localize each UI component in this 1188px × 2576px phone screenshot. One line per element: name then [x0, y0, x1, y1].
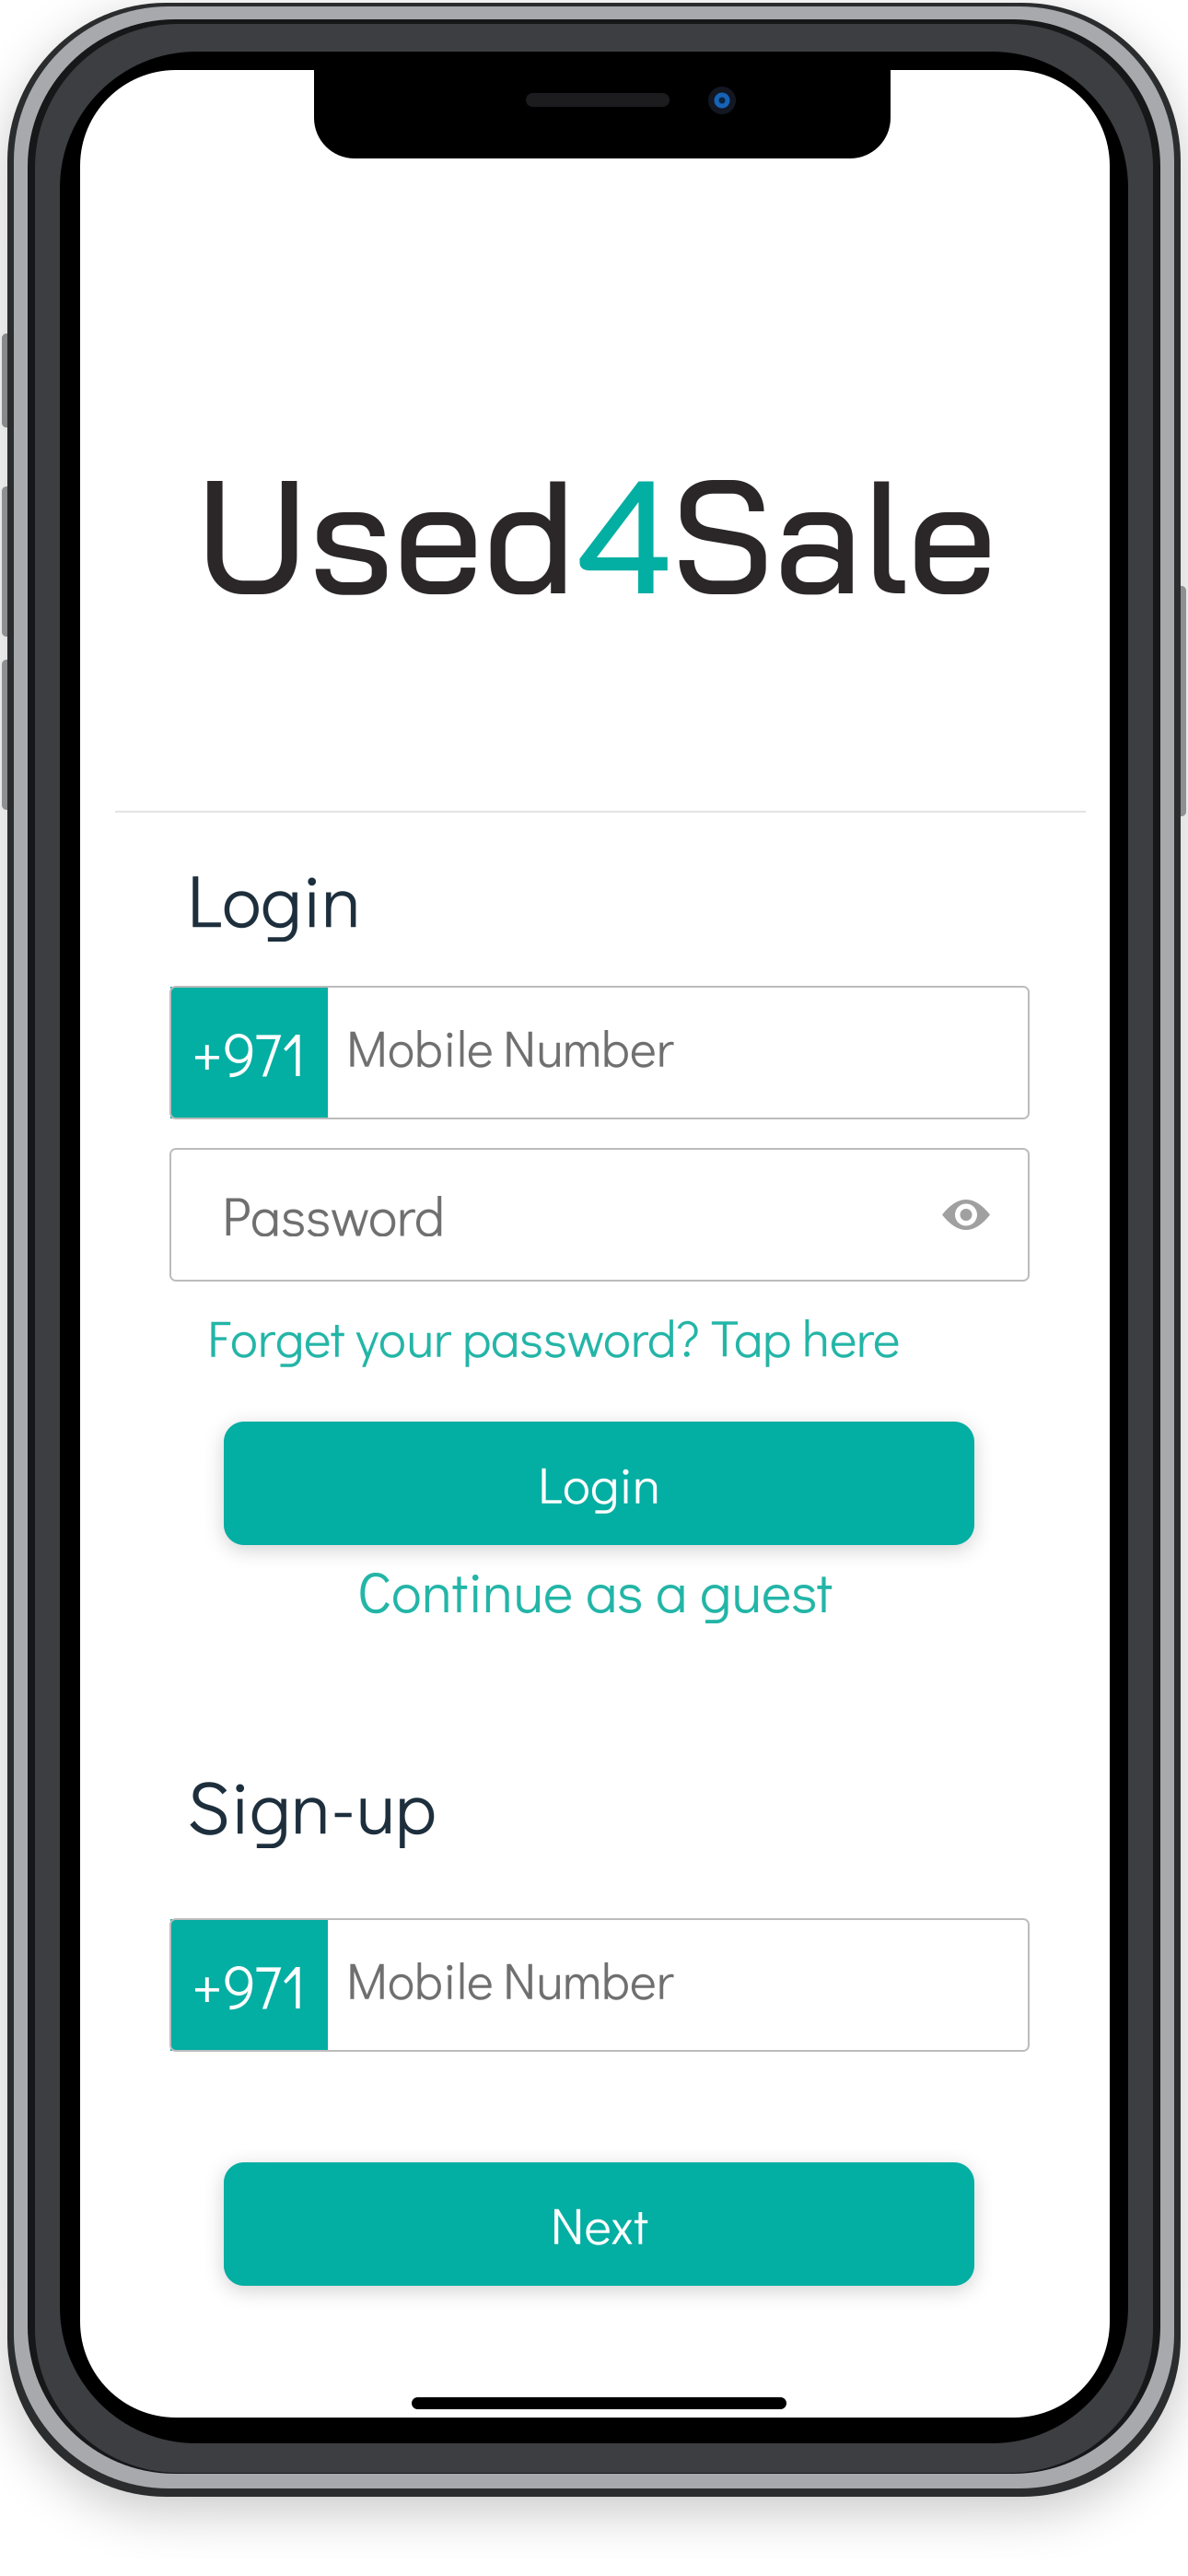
staticText: Continue as a guest — [357, 1553, 833, 1627]
staticText: +971 — [192, 1013, 306, 1092]
button[interactable]: Forget your password? Tap here — [170, 1301, 937, 1373]
staticText: Forget your password? Tap here — [207, 1303, 900, 1371]
button[interactable]: Login — [224, 1422, 974, 1545]
staticText: Used — [196, 434, 577, 633]
staticText: Sign-up — [187, 1757, 437, 1853]
button[interactable]: Continue as a guest — [80, 1553, 1110, 1627]
staticText: Login — [538, 1450, 660, 1517]
staticText: Mobile — [346, 1014, 494, 1080]
staticText: Mobile — [346, 1946, 494, 2013]
staticText: Password — [222, 1179, 445, 1250]
staticText: +971 — [192, 1946, 306, 2025]
staticText: Number — [503, 1014, 674, 1080]
staticText: Sale — [671, 434, 996, 633]
staticText: Number — [503, 1946, 674, 2013]
button[interactable]: Next — [224, 2162, 974, 2286]
staticText: 4 — [577, 434, 671, 633]
staticText: Next — [550, 2190, 648, 2258]
staticText: Login — [187, 850, 361, 947]
button[interactable]: Show password — [922, 1171, 1010, 1259]
